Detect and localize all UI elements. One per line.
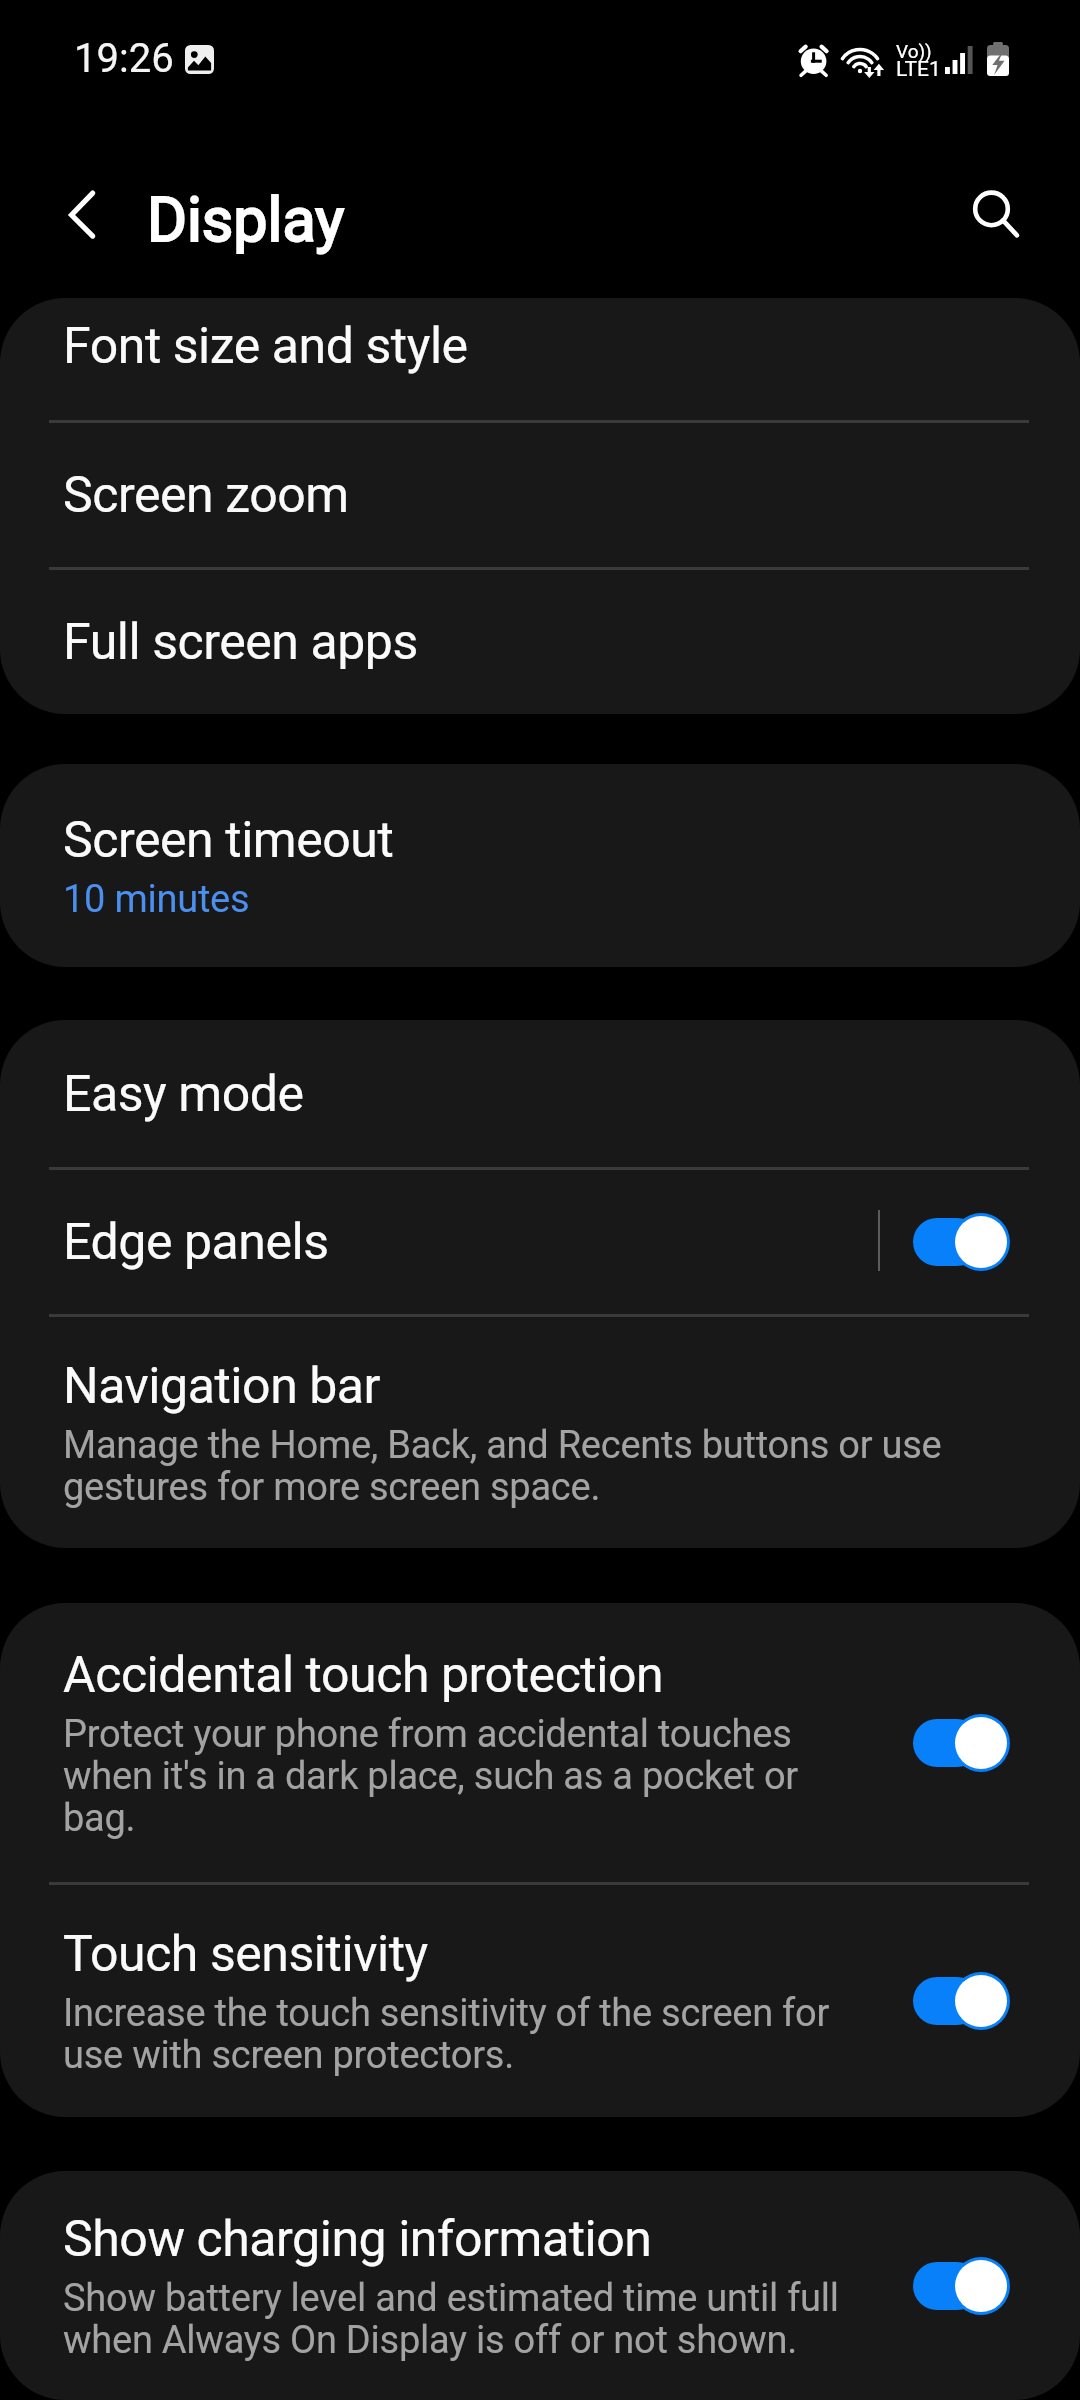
staticText: Screen timeout [63,811,394,869]
button[interactable]: Screen zoom [0,423,1080,567]
staticText: Easy mode [63,1065,304,1123]
staticText: Touch sensitivity [63,1925,428,1983]
staticText: Font size and style [63,317,468,375]
button[interactable]: Search [943,161,1039,257]
button[interactable]: Navigate up [21,143,117,239]
button[interactable]: Show charging information [0,2171,1080,2400]
staticText: 19:26 [74,35,174,82]
staticText: Display [147,184,345,255]
staticText: 10 minutes [63,879,250,921]
staticText: LTE1 [896,57,941,82]
staticText: Full screen apps [63,613,418,671]
staticText: Vo)) [896,40,932,62]
button[interactable]: Touch sensitivity [913,1972,1010,2030]
staticText: Show battery level and estimated time un… [63,2278,863,2362]
button[interactable]: Font size and style [0,298,1080,420]
button[interactable]: Touch sensitivity [0,1885,1080,2117]
button[interactable]: Navigation bar [0,1317,1080,1548]
button[interactable]: Accidental touch protection [913,1714,1010,1772]
button[interactable]: Show charging information [913,2257,1010,2315]
staticText: Edge panels [63,1213,329,1271]
staticText: Screen zoom [63,466,349,524]
staticText: Increase the touch sensitivity of the sc… [63,1993,863,2077]
button[interactable]: Screen timeout [0,764,1080,967]
staticText: Accidental touch protection [63,1646,664,1704]
button[interactable]: Accidental touch protection [0,1603,1080,1882]
button[interactable]: Easy mode [0,1020,1080,1167]
staticText: Show charging information [63,2210,652,2268]
staticText: Navigation bar [63,1357,381,1415]
button[interactable]: Edge panels [913,1213,1010,1271]
button[interactable]: Edge panels [0,1170,1080,1314]
staticText: Protect your phone from accidental touch… [63,1714,863,1840]
staticText: Manage the Home, Back, and Recents butto… [63,1425,963,1509]
button[interactable]: Full screen apps [0,570,1080,714]
